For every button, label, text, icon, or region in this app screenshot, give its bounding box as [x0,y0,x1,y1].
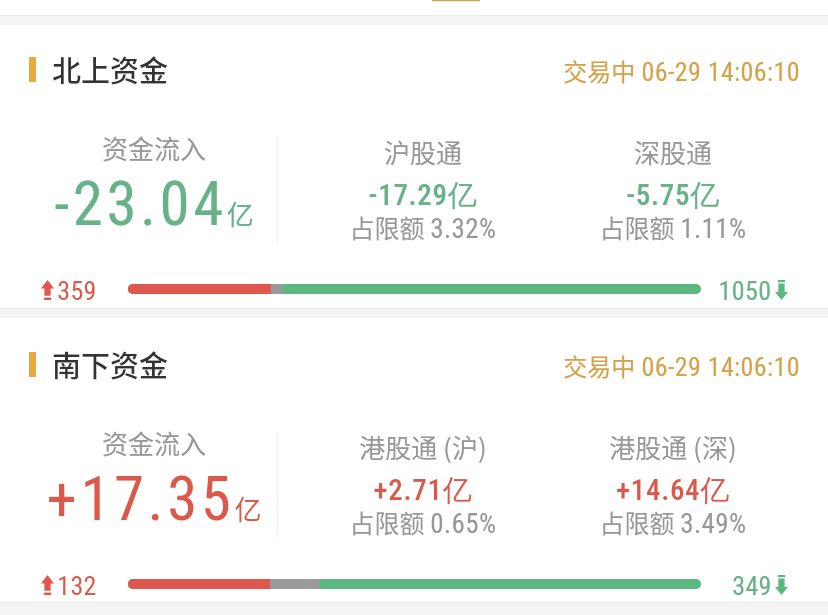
staticText: 1050 [700,276,790,306]
staticText: 交易中 06-29 14:06:10 [0,348,800,383]
staticText: -17.29亿 [293,177,553,214]
staticText: -5.75亿 [543,177,803,214]
staticText: 占限额 1.11% [543,209,803,245]
staticText: 港股通 (沪) [293,428,553,466]
staticText: +2.71亿 [293,472,553,509]
staticText: 交易中 06-29 14:06:10 [0,53,800,88]
staticText: 资金流入 [34,129,274,167]
staticText: 资金流入 [34,424,274,462]
other: Rising stocks [41,280,54,300]
staticText: 359 [32,276,122,306]
other: Rising stocks [41,575,54,595]
staticText: 沪股通 [293,133,553,171]
staticText: 南下资金 [52,343,169,385]
staticText: +14.64亿 [543,472,803,509]
staticText: 北上资金 [52,48,169,90]
staticText: 港股通 (深) [543,428,803,466]
staticText: 占限额 3.32% [293,209,553,245]
other: Falling stocks [775,575,788,595]
staticText: 132 [32,571,122,601]
button[interactable]: 北上资金 [0,25,828,113]
staticText: 深股通 [543,133,803,171]
staticText: -23.04亿 [0,168,308,239]
staticText: 占限额 0.65% [293,504,553,540]
staticText: 占限额 3.49% [543,504,803,540]
other: Falling stocks [775,280,788,300]
button[interactable]: 南下资金 [0,320,828,408]
button[interactable]: Rising stocks [0,262,828,316]
staticText: 349 [707,571,797,601]
staticText: +17.35亿 [0,463,308,534]
button[interactable]: Rising stocks [0,557,828,611]
